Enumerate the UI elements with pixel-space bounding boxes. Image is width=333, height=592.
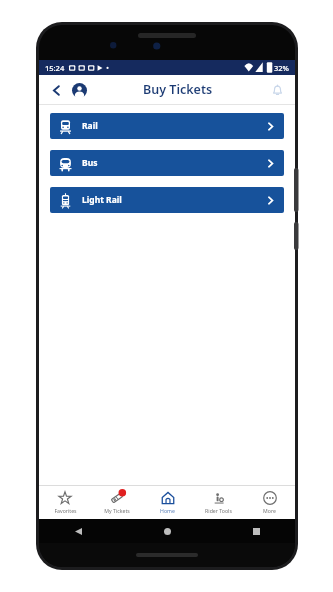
button[interactable]: Recents — [247, 522, 265, 540]
button[interactable]: Notifications — [266, 79, 288, 101]
button[interactable]: Account — [68, 79, 90, 101]
button[interactable]: Bus — [50, 150, 284, 176]
staticText: Light Rail — [82, 194, 122, 206]
staticText: Rider Tools — [205, 507, 232, 514]
staticText: 15:24 — [45, 63, 65, 73]
staticText: Favorites — [54, 507, 77, 514]
button[interactable]: Back — [46, 80, 66, 100]
staticText: Bus — [82, 157, 98, 169]
button[interactable]: Home — [158, 522, 176, 540]
staticText: 32% — [274, 63, 289, 73]
button[interactable]: Rider Tools — [193, 486, 244, 519]
staticText: Buy Tickets — [143, 81, 213, 98]
staticText: Rail — [82, 120, 98, 132]
button[interactable]: Back — [69, 522, 87, 540]
button[interactable]: Rail — [50, 113, 284, 139]
button[interactable]: Home — [142, 486, 193, 519]
button[interactable]: My Tickets — [91, 486, 142, 519]
staticText: My Tickets — [104, 507, 130, 514]
button[interactable]: Light Rail — [50, 187, 284, 213]
button[interactable]: More — [244, 486, 295, 519]
button[interactable]: Favorites — [39, 486, 91, 519]
staticText: Home — [160, 507, 175, 514]
staticText: More — [263, 507, 276, 514]
